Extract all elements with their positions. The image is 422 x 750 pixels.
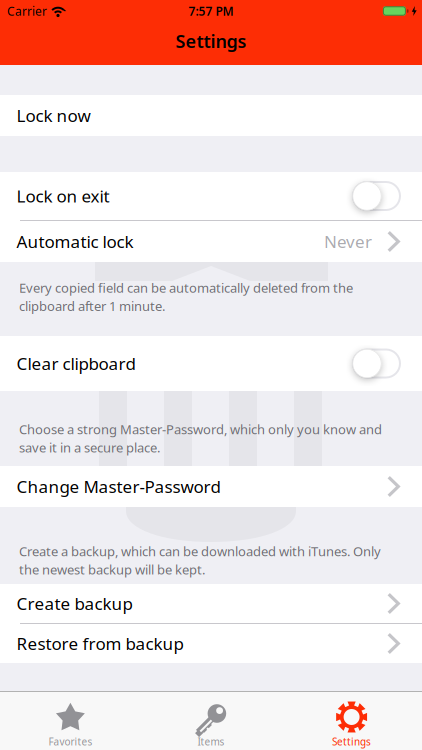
button[interactable]: Restore from backup — [0, 624, 422, 663]
staticText: Carrier — [7, 3, 47, 19]
staticText: Automatic lock — [16, 230, 133, 253]
staticText: clipboard after 1 minute. — [19, 297, 165, 315]
staticText: Create a backup, which can be downloaded… — [19, 542, 381, 560]
button[interactable]: Clear clipboard — [352, 348, 401, 378]
button[interactable]: Items — [141, 692, 281, 750]
staticText: Lock on exit — [16, 185, 109, 207]
staticText: Choose a strong Master-Password, which o… — [19, 420, 382, 438]
button[interactable]: Lock on exit — [352, 181, 401, 211]
staticText: Restore from backup — [16, 632, 183, 655]
staticText: Favorites — [48, 735, 92, 748]
button[interactable]: Settings — [281, 692, 422, 750]
staticText: Items — [197, 735, 224, 748]
button[interactable]: Automatic lock — [0, 221, 422, 262]
staticText: save it in a secure place. — [19, 439, 160, 456]
button[interactable]: Favorites — [0, 692, 141, 750]
staticText: Settings — [175, 29, 246, 53]
button[interactable]: Lock now — [0, 95, 422, 136]
staticText: Every copied field can be automatically … — [19, 279, 353, 296]
staticText: Create backup — [16, 592, 132, 615]
staticText: the newest backup will be kept. — [19, 561, 205, 578]
button[interactable]: Change Master-Password — [0, 466, 422, 507]
staticText: Change Master-Password — [16, 475, 220, 498]
staticText: 7:57 PM — [188, 3, 233, 19]
staticText: Lock now — [16, 104, 90, 127]
staticText: Clear clipboard — [16, 352, 135, 375]
button[interactable]: Create backup — [0, 584, 422, 623]
staticText: Never — [324, 230, 372, 253]
staticText: Settings — [332, 735, 371, 748]
